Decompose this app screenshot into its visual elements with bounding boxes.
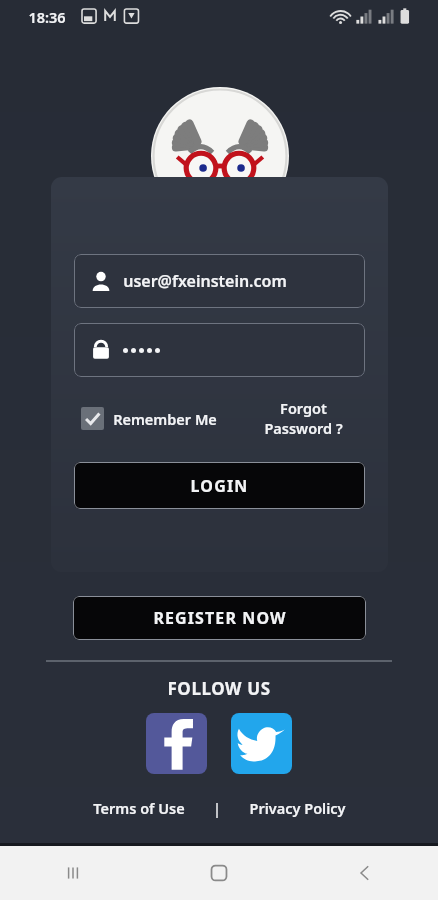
staticText: user@fxeinstein.com — [123, 270, 287, 292]
button[interactable]: Remember Me — [81, 407, 217, 430]
button[interactable] — [74, 323, 365, 377]
button[interactable]: LOGIN — [74, 462, 365, 509]
button[interactable]: Facebook — [146, 713, 207, 774]
button[interactable]: Recents — [0, 846, 146, 900]
staticText: Terms of Use — [93, 798, 185, 818]
staticText: Remember Me — [113, 409, 217, 429]
staticText: 18:36 — [28, 7, 66, 27]
button[interactable]: REGISTER NOW — [73, 596, 366, 640]
staticText: Privacy Policy — [249, 798, 346, 818]
button[interactable]: Back — [292, 846, 438, 900]
button[interactable]: Terms of Use — [89, 798, 189, 818]
staticText: LOGIN — [190, 475, 249, 497]
button[interactable]: Forgot Password ? — [242, 398, 365, 438]
button[interactable]: Privacy Policy — [245, 798, 350, 818]
staticText: FOLLOW US — [167, 677, 271, 700]
button[interactable]: Twitter — [231, 713, 292, 774]
staticText: | — [213, 798, 221, 818]
button[interactable]: Home — [146, 846, 292, 900]
button[interactable]: user@fxeinstein.com — [74, 254, 365, 308]
staticText: REGISTER NOW — [153, 607, 287, 629]
staticText: Forgot Password ? — [242, 398, 365, 438]
